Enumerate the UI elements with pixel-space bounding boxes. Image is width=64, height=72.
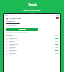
staticText: Credit Card: [9, 17, 22, 20]
staticText: every payment: [23, 8, 41, 11]
button[interactable]: [6, 46, 58, 49]
button[interactable]: Card: [56, 17, 59, 19]
staticText: Track: [28, 3, 37, 7]
button[interactable]: [6, 40, 58, 43]
button[interactable]: [6, 43, 58, 46]
button[interactable]: [6, 52, 58, 55]
button[interactable]: [6, 28, 38, 31]
button[interactable]: Menu: [5, 17, 8, 20]
button[interactable]: [6, 37, 58, 40]
button[interactable]: [6, 49, 58, 52]
